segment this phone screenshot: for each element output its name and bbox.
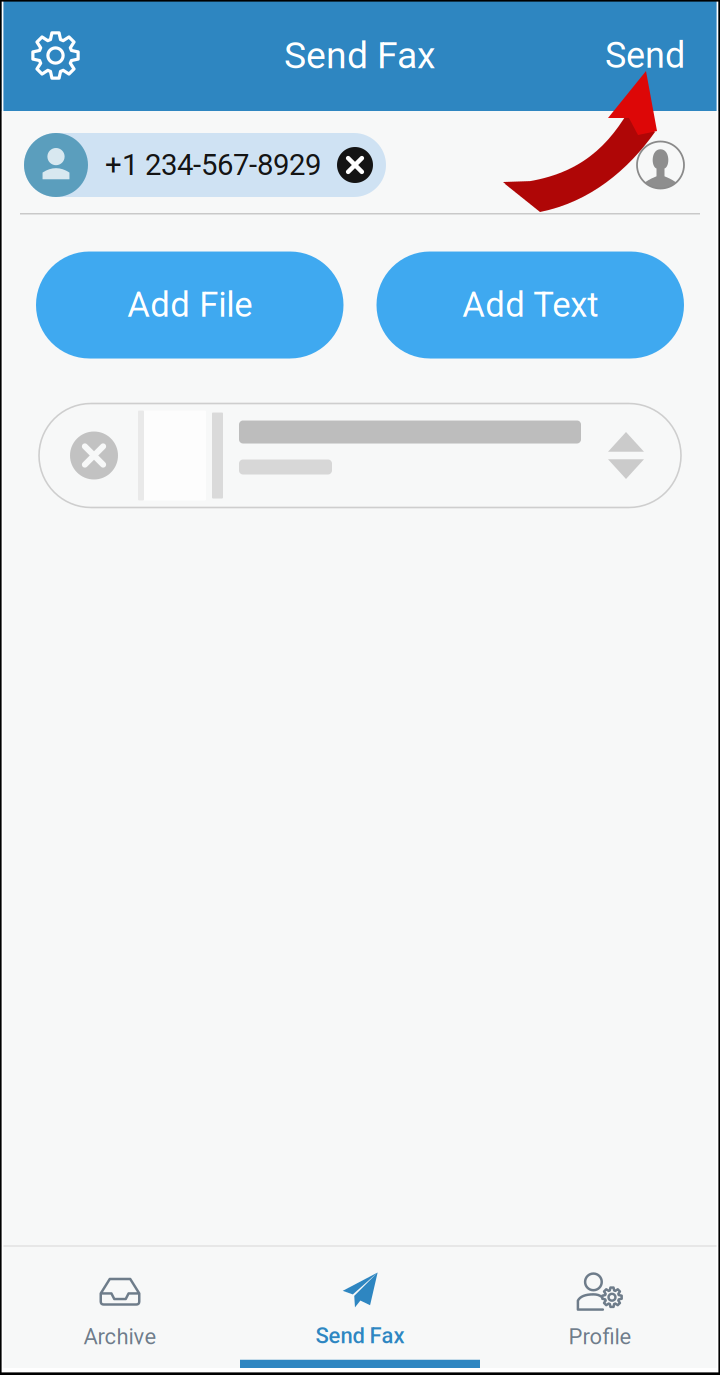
staticText: Send Fax: [315, 1323, 404, 1349]
staticText: Send Fax: [284, 34, 436, 77]
button[interactable]: Send Fax: [240, 1247, 480, 1375]
staticText: Add File: [127, 285, 252, 325]
staticText: +1 234-567-8929: [105, 148, 321, 182]
button[interactable]: Choose contact: [637, 141, 684, 188]
staticText: Add Text: [462, 285, 598, 325]
button[interactable]: Add Text: [376, 251, 684, 358]
button[interactable]: Settings: [0, 0, 111, 111]
button[interactable]: Add File: [36, 251, 343, 358]
staticText: Profile: [568, 1324, 631, 1350]
button[interactable]: Profile: [480, 1247, 720, 1375]
staticText: Archive: [83, 1324, 156, 1350]
button[interactable]: Archive: [0, 1247, 240, 1375]
staticText: Send: [605, 34, 685, 77]
button[interactable]: Send: [592, 0, 698, 111]
button[interactable]: Remove attachment: [39, 431, 138, 479]
